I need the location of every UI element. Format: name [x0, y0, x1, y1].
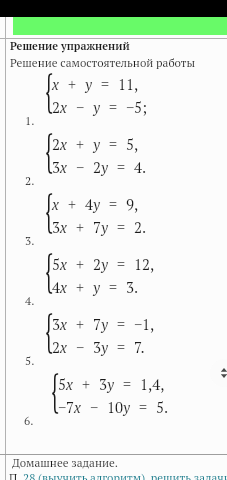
staticText: Решение самостоятельной работы: [10, 55, 196, 70]
staticText: x: [60, 134, 67, 154]
staticText: =: [117, 217, 125, 237]
staticText: +: [76, 254, 84, 274]
staticText: y: [107, 374, 114, 394]
staticText: +: [68, 194, 76, 214]
staticText: =: [109, 134, 117, 154]
staticText: +: [76, 217, 84, 237]
staticText: =: [109, 97, 117, 117]
staticText: −: [90, 397, 98, 417]
staticText: 1,4,: [140, 374, 165, 394]
staticText: 9,: [126, 194, 139, 214]
staticText: Домашнее задание.: [12, 455, 118, 470]
staticText: x: [60, 157, 67, 177]
staticText: −: [76, 97, 84, 117]
staticText: +: [68, 74, 76, 94]
staticText: 6.: [24, 413, 34, 428]
staticText: 2.: [134, 217, 147, 237]
staticText: 28 (выучить алгоритм), решить задачи: [23, 470, 227, 480]
staticText: y: [101, 217, 108, 237]
staticText: =: [123, 374, 131, 394]
staticText: =: [139, 397, 147, 417]
staticText: 2: [93, 254, 101, 274]
staticText: x: [60, 97, 67, 117]
staticText: x: [60, 314, 67, 334]
staticText: y: [101, 314, 108, 334]
staticText: 3: [52, 157, 60, 177]
staticText: −: [76, 157, 84, 177]
staticText: +: [76, 314, 84, 334]
staticText: 2: [52, 97, 60, 117]
staticText: 3: [52, 314, 60, 334]
staticText: 3: [93, 337, 101, 357]
staticText: x: [60, 277, 67, 297]
staticText: 3: [99, 374, 107, 394]
staticText: y: [85, 74, 92, 94]
staticText: y: [93, 277, 100, 297]
staticText: −5;: [126, 97, 147, 117]
staticText: 5.: [156, 397, 169, 417]
staticText: −7: [58, 397, 74, 417]
staticText: =: [101, 74, 109, 94]
staticText: =: [117, 254, 125, 274]
staticText: y: [93, 194, 100, 214]
staticText: x: [60, 217, 67, 237]
staticText: =: [109, 194, 117, 214]
staticText: 11,: [118, 74, 139, 94]
staticText: 7.: [134, 337, 145, 357]
staticText: 4: [52, 277, 60, 297]
staticText: 5: [52, 254, 60, 274]
staticText: −1,: [134, 314, 155, 334]
staticText: y: [101, 254, 108, 274]
staticText: 2: [52, 337, 60, 357]
staticText: 4.: [134, 157, 147, 177]
staticText: =: [117, 314, 125, 334]
staticText: y: [101, 337, 108, 357]
staticText: 2.: [25, 173, 35, 188]
staticText: y: [93, 134, 100, 154]
staticText: x: [52, 194, 59, 214]
staticText: 5: [58, 374, 66, 394]
staticText: +: [76, 134, 84, 154]
staticText: +: [76, 277, 84, 297]
staticText: =: [109, 277, 117, 297]
staticText: 7: [93, 314, 101, 334]
staticText: 4: [85, 194, 93, 214]
button[interactable]: Scroll: [210, 359, 227, 387]
staticText: 5.: [25, 353, 35, 368]
staticText: 3.: [25, 233, 35, 248]
staticText: 1.: [25, 113, 35, 128]
staticText: =: [117, 337, 125, 357]
staticText: =: [117, 157, 125, 177]
staticText: 3.: [126, 277, 139, 297]
staticText: −: [76, 337, 84, 357]
staticText: 3: [52, 217, 60, 237]
staticText: Решение упражнений: [10, 39, 130, 53]
staticText: y: [101, 157, 108, 177]
staticText: 2: [52, 134, 60, 154]
staticText: 10: [107, 397, 123, 417]
staticText: y: [93, 97, 100, 117]
staticText: x: [66, 374, 73, 394]
staticText: 4.: [25, 293, 35, 308]
staticText: x: [52, 74, 59, 94]
staticText: 5,: [126, 134, 139, 154]
staticText: П.: [9, 470, 23, 480]
staticText: +: [82, 374, 90, 394]
staticText: x: [60, 254, 67, 274]
staticText: 2: [93, 157, 101, 177]
staticText: y: [123, 397, 130, 417]
staticText: x: [74, 397, 81, 417]
staticText: x: [60, 337, 67, 357]
staticText: 12,: [134, 254, 155, 274]
staticText: 7: [93, 217, 101, 237]
